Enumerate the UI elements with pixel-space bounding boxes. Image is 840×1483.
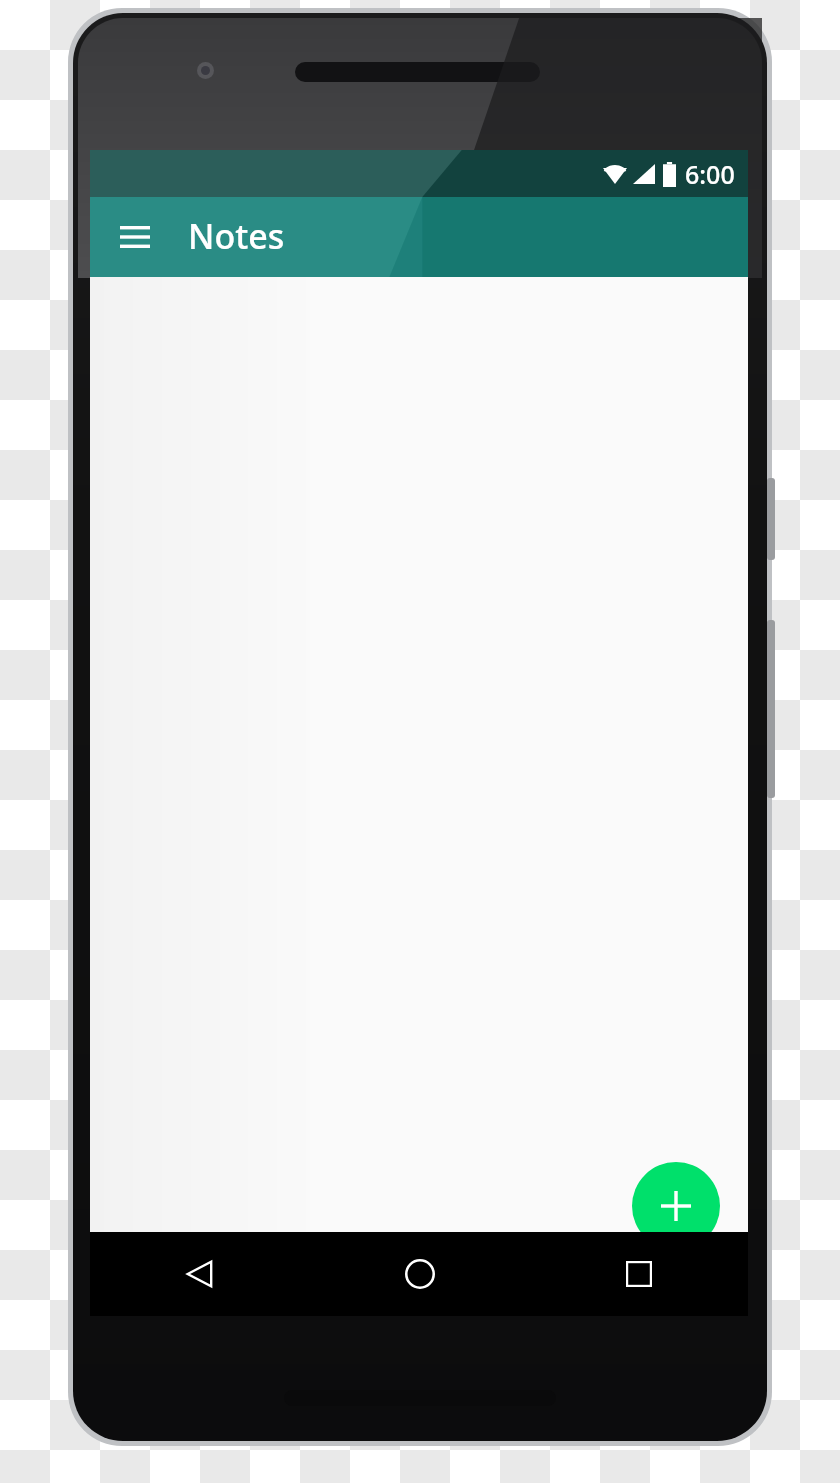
button[interactable]: Open navigation menu (106, 208, 164, 266)
button[interactable]: Recent apps (529, 1232, 748, 1316)
staticText: Notes (188, 213, 285, 259)
button[interactable]: Home (310, 1232, 529, 1316)
staticText: 6:00 (685, 157, 735, 191)
button[interactable]: Back (90, 1232, 310, 1316)
button[interactable]: Add note (632, 1162, 720, 1250)
